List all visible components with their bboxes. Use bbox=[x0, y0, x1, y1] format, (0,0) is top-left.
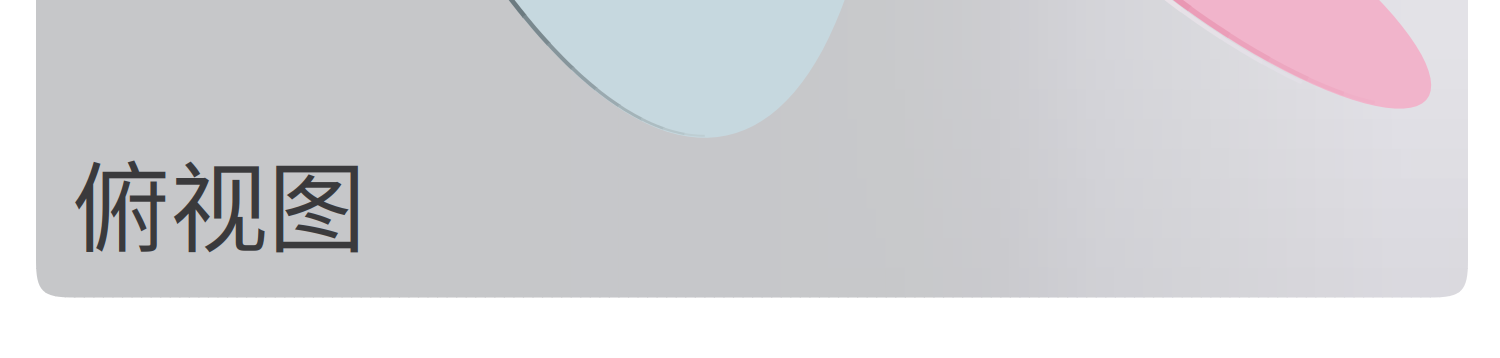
staticText: 俯视图 bbox=[72, 130, 366, 272]
